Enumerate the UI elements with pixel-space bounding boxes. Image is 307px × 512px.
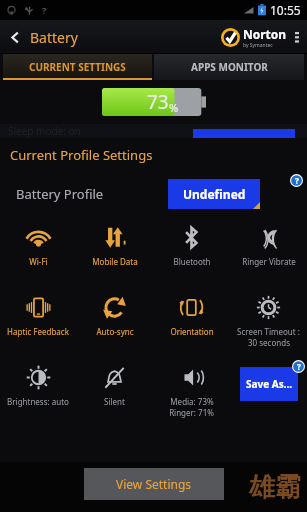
staticText: Bluetooth (173, 256, 211, 267)
button[interactable]: Save As... (240, 367, 298, 401)
staticText: Haptic Feedback (7, 326, 69, 337)
staticText: 73 (147, 89, 169, 115)
staticText: Battery (30, 28, 78, 47)
staticText: Media: 73% (170, 396, 214, 407)
staticText: Sleep mode: on (8, 124, 81, 138)
staticText: 10:55 (270, 2, 301, 18)
staticText: Auto-sync (96, 326, 134, 337)
staticText: Current Profile Settings (10, 146, 153, 164)
staticText: Screen Timeout : (237, 326, 300, 337)
staticText: Ringer Vibrate (242, 256, 296, 267)
button[interactable]: Ringer Vibrate (230, 216, 307, 286)
staticText: Brightness: auto (7, 396, 69, 407)
button[interactable]: Orientation (153, 286, 230, 356)
button[interactable]: Media: 73% (153, 356, 230, 418)
staticText: Norton (243, 26, 287, 42)
button[interactable]: Help (292, 360, 305, 373)
staticText: ? (297, 361, 301, 372)
button[interactable]: Undefined (168, 179, 260, 209)
button[interactable]: More options (287, 20, 307, 54)
staticText: CURRENT SETTINGS (29, 60, 126, 74)
button[interactable]: Wi-Fi (0, 216, 76, 286)
button[interactable]: Screen Timeout : (230, 286, 307, 356)
staticText: APPS MONITOR (191, 60, 268, 74)
button[interactable]: Mobile Data (76, 216, 153, 286)
button[interactable]: Haptic Feedback (0, 286, 76, 356)
staticText: ? (295, 175, 299, 186)
staticText: Battery Profile (16, 185, 104, 203)
staticText: Wi-Fi (29, 256, 48, 267)
staticText: by Symantec (243, 42, 273, 49)
staticText: Undefined (183, 186, 246, 202)
button[interactable]: Auto-sync (76, 286, 153, 356)
button[interactable]: View Settings (84, 468, 224, 500)
staticText: Orientation (170, 326, 214, 337)
button[interactable]: Bluetooth (153, 216, 230, 286)
staticText: Silent (104, 396, 125, 407)
button[interactable]: Back (0, 20, 30, 54)
button[interactable]: Brightness: auto (0, 356, 76, 418)
staticText: Ringer: 71% (169, 407, 214, 418)
button[interactable]: CURRENT SETTINGS (3, 54, 152, 80)
staticText: 雄霸 (249, 471, 301, 504)
staticText: View Settings (116, 476, 192, 492)
staticText: Mobile Data (92, 256, 138, 267)
staticText: 30 seconds (248, 337, 290, 348)
staticText: % (169, 100, 179, 115)
button[interactable]: APPS MONITOR (154, 54, 304, 80)
button[interactable]: Help (290, 174, 303, 187)
staticText: Save As... (246, 377, 293, 391)
staticText: ? (42, 4, 47, 16)
button[interactable]: Silent (76, 356, 153, 418)
